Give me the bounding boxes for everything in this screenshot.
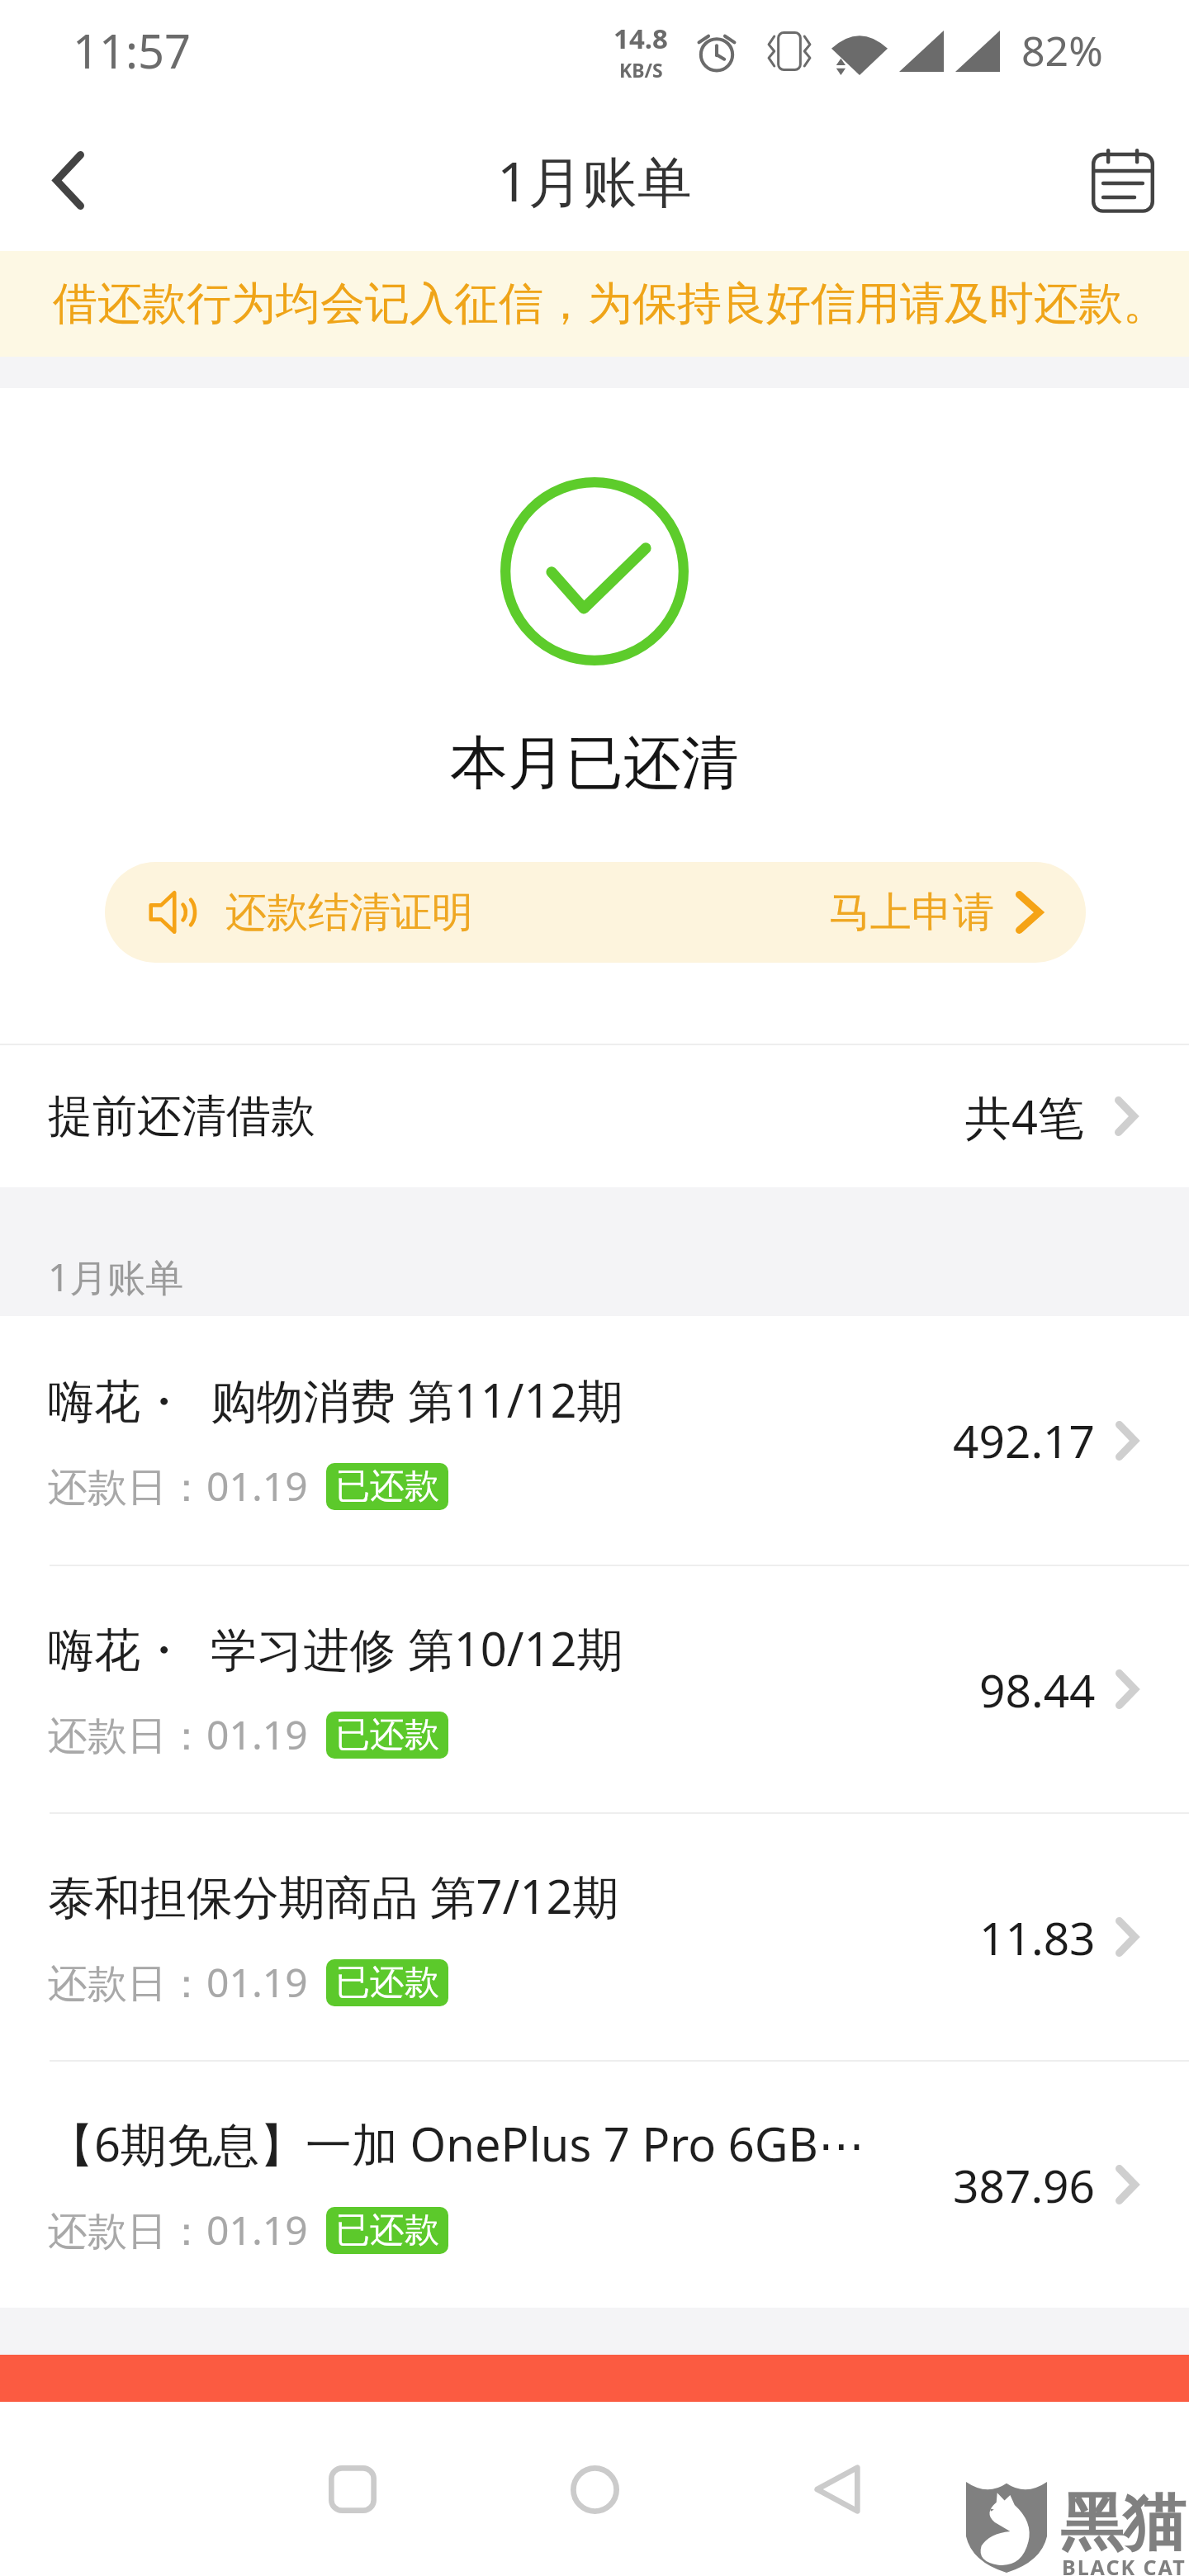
staticText: 嗨花・ 购物消费 第11/12期 (48, 1368, 623, 1431)
staticText: 387.96 (953, 2154, 1096, 2216)
staticText: 泰和担保分期商品 第7/12期 (48, 1864, 619, 1927)
staticText: 还款日：01.19 (48, 2203, 308, 2257)
button[interactable]: 嗨花・ 购物消费 第11/12期 (0, 1316, 1189, 1565)
button[interactable]: 嗨花・ 学习进修 第10/12期 (0, 1566, 1189, 1812)
staticText: 马上申请 (829, 887, 994, 939)
staticText: KB/S (619, 57, 663, 83)
staticText: 82% (1021, 22, 1103, 78)
staticText: 还款日：01.19 (48, 1459, 308, 1513)
staticText: 98.44 (979, 1659, 1096, 1721)
staticText: 已还款 (335, 1961, 439, 2005)
staticText: 嗨花・ 学习进修 第10/12期 (48, 1617, 623, 1679)
button[interactable]: Back (0, 102, 137, 251)
staticText: 11.83 (979, 1906, 1096, 1968)
button[interactable]: 泰和担保分期商品 第7/12期 (0, 1814, 1189, 2060)
staticText: 已还款 (335, 1713, 439, 1757)
staticText: 本月已还清 (450, 727, 739, 800)
staticText: 还款日：01.19 (48, 1955, 308, 2010)
staticText: BLACK CAT (1062, 2553, 1187, 2576)
button[interactable]: Recents (295, 2432, 410, 2547)
staticText: 已还款 (335, 2209, 439, 2252)
staticText: 还款结清证明 (225, 887, 473, 939)
staticText: 492.17 (953, 1409, 1096, 1471)
staticText: 【6期免息】一加 OnePlus 7 Pro 6GB⋯ (48, 2112, 865, 2175)
staticText: 提前还清借款 (48, 1088, 315, 1144)
staticText: 共4笔 (965, 1085, 1085, 1148)
button[interactable]: Home (537, 2432, 652, 2547)
staticText: 借还款行为均会记入征信，为保持良好信用请及时还款。 (53, 276, 1168, 332)
button[interactable]: Back (779, 2432, 895, 2547)
button[interactable]: 【6期免息】一加 OnePlus 7 Pro 6GB⋯ (0, 2062, 1189, 2308)
button[interactable]: 提前还清借款 (0, 1045, 1189, 1187)
staticText: 1月账单 (48, 1251, 184, 1303)
staticText: 1月账单 (497, 143, 692, 217)
button[interactable]: 还款结清证明 (105, 862, 1086, 963)
staticText: 已还款 (335, 1465, 439, 1508)
staticText: 11:57 (73, 19, 192, 82)
staticText: 还款日：01.19 (48, 1707, 308, 1762)
staticText: 黑猫 (1060, 2484, 1186, 2563)
button[interactable]: Calendar (1057, 102, 1189, 251)
staticText: 14.8 (613, 20, 668, 57)
